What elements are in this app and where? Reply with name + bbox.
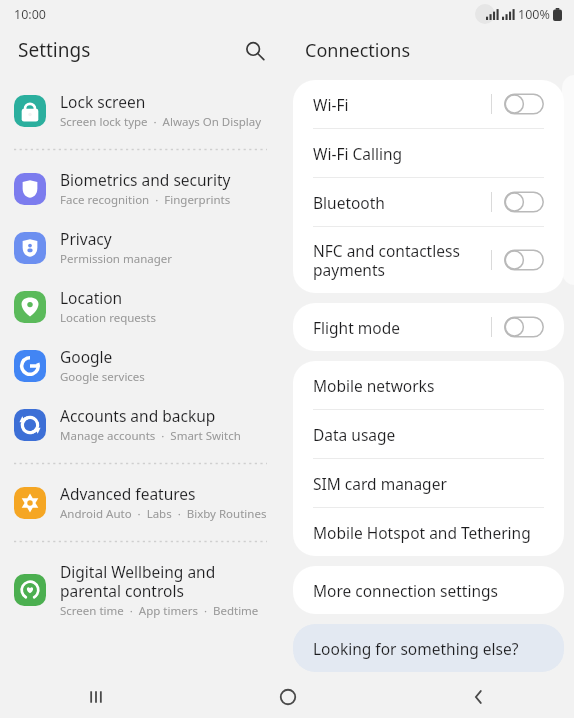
staticText: Location requests — [60, 310, 156, 326]
button[interactable]: Home — [192, 676, 383, 718]
button[interactable]: Toggle — [504, 190, 544, 214]
staticText: Data usage — [313, 424, 544, 445]
button[interactable]: Search — [237, 33, 271, 67]
button[interactable]: Google — [0, 337, 285, 394]
button[interactable]: Data usage — [293, 410, 564, 458]
staticText: Mobile networks — [313, 375, 544, 396]
button[interactable]: Toggle — [504, 315, 544, 339]
staticText: Connections — [305, 38, 411, 63]
staticText: Looking for something else? — [313, 638, 544, 659]
button[interactable]: Mobile networks — [293, 361, 564, 409]
staticText: Location — [60, 287, 123, 308]
button[interactable]: Recents — [0, 676, 192, 718]
button[interactable]: Digital Wellbeing and parental controls — [0, 552, 285, 628]
button[interactable]: More connection settings — [293, 566, 564, 614]
staticText: Flight mode — [313, 317, 491, 338]
staticText: Advanced features — [60, 483, 196, 504]
staticText: Manage accounts · Smart Switch — [60, 428, 241, 444]
staticText: Mobile Hotspot and Tethering — [313, 522, 544, 543]
button[interactable]: Privacy — [0, 219, 285, 276]
staticText: Digital Wellbeing and parental controls — [60, 561, 273, 601]
staticText: Google services — [60, 369, 145, 385]
button[interactable]: Advanced features — [0, 474, 285, 531]
staticText: 10:00 — [14, 6, 46, 23]
button[interactable]: Wi-Fi — [293, 80, 564, 128]
staticText: NFC and contactless payments — [313, 240, 491, 281]
button[interactable]: Accounts and backup — [0, 396, 285, 453]
button[interactable]: Mobile Hotspot and Tethering — [293, 508, 564, 556]
staticText: Privacy — [60, 228, 112, 249]
button[interactable]: Location — [0, 278, 285, 335]
staticText: Permission manager — [60, 251, 173, 267]
staticText: 100% — [518, 6, 550, 23]
button[interactable]: Toggle — [504, 248, 544, 272]
button[interactable]: Bluetooth — [293, 178, 564, 226]
button[interactable]: NFC and contactless payments — [293, 227, 564, 293]
button[interactable]: Toggle — [504, 92, 544, 116]
staticText: More connection settings — [313, 580, 544, 601]
staticText: Face recognition · Fingerprints — [60, 192, 231, 208]
staticText: SIM card manager — [313, 473, 544, 494]
button[interactable]: SIM card manager — [293, 459, 564, 507]
staticText: Accounts and backup — [60, 405, 216, 426]
staticText: Lock screen — [60, 91, 146, 112]
staticText: Settings — [18, 37, 237, 63]
staticText: Wi-Fi Calling — [313, 143, 544, 164]
button[interactable]: Back — [383, 676, 574, 718]
button[interactable]: Wi-Fi Calling — [293, 129, 564, 177]
staticText: Google — [60, 346, 113, 367]
button[interactable]: Flight mode — [293, 303, 564, 351]
button[interactable]: Looking for something else? — [293, 624, 564, 672]
staticText: Android Auto · Labs · Bixby Routines — [60, 506, 267, 522]
staticText: Biometrics and security — [60, 169, 231, 190]
staticText: Bluetooth — [313, 192, 491, 213]
staticText: Screen time · App timers · Bedtime mode — [60, 603, 273, 619]
staticText: Screen lock type · Always On Display — [60, 114, 262, 130]
button[interactable]: Biometrics and security — [0, 160, 285, 217]
staticText: Wi-Fi — [313, 94, 491, 115]
button[interactable]: Lock screen — [0, 82, 285, 139]
